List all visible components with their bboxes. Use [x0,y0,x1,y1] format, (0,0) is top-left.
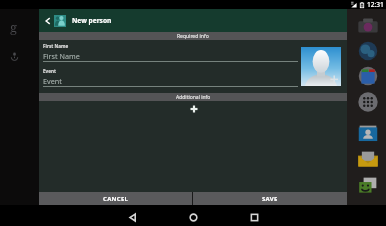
button[interactable]: Back [122,208,143,226]
staticText: Additional info [176,94,211,101]
staticText: Event [43,68,56,74]
button[interactable]: Contacts [356,122,379,145]
staticText: Required info [177,33,209,40]
button[interactable]: Email [356,148,379,171]
staticText: SAVE [262,195,278,203]
button[interactable]: Recents [244,208,265,226]
button[interactable]: CANCEL [39,192,192,205]
staticText: New person [72,16,112,25]
staticText: First Name [43,43,69,49]
staticText: g [10,18,17,36]
button[interactable]: Home [183,208,204,226]
button[interactable]: Event [43,76,298,87]
staticText: 12:31 [367,0,384,9]
button[interactable]: Add photo [300,46,342,87]
button[interactable]: Navigate up [42,15,54,27]
button[interactable]: Add field [186,101,201,116]
staticText: Event [43,76,62,86]
button[interactable]: Apps [356,90,379,113]
button[interactable]: SAVE [193,192,347,205]
other: Voice search [10,51,19,60]
button[interactable]: First Name [43,51,298,62]
button[interactable]: Camera [356,14,379,37]
staticText: First Name [43,51,80,61]
button[interactable]: Messaging [356,174,379,197]
button[interactable]: Browser [356,39,379,62]
button[interactable]: Play Store [356,64,379,87]
staticText: CANCEL [103,195,129,203]
